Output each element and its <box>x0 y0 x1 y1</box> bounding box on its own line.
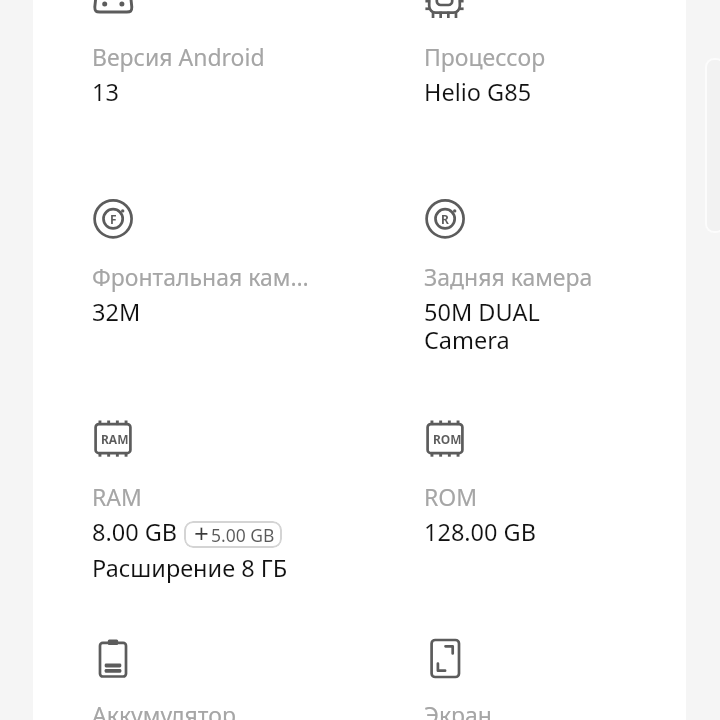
button[interactable]: Display <box>424 638 720 720</box>
staticText: 13 <box>92 76 119 108</box>
staticText: R <box>441 211 449 227</box>
staticText: 32M <box>92 296 141 328</box>
staticText: 5.00 GB <box>211 523 275 547</box>
staticText: 128.00 GB <box>424 516 537 548</box>
staticText: Расширение 8 ГБ <box>92 552 288 584</box>
staticText: + <box>194 521 209 542</box>
staticText: 50M DUAL Camera <box>424 296 540 356</box>
staticText: Фронтальная камера <box>92 261 316 292</box>
button[interactable]: Rear camera <box>424 200 720 405</box>
button[interactable]: + <box>184 521 282 548</box>
staticText: ROM <box>424 481 648 512</box>
staticText: ROM <box>433 431 462 447</box>
other: Display <box>424 638 464 678</box>
other: Processor <box>424 0 464 20</box>
staticText: Версия Android <box>92 41 316 72</box>
button[interactable]: RAM <box>92 420 392 625</box>
staticText: 8.00 GB <box>92 516 178 548</box>
other: Rear camera <box>424 200 464 240</box>
other: Battery <box>92 638 132 678</box>
button[interactable]: Android version <box>92 0 392 185</box>
other: Android version <box>92 0 132 20</box>
staticText: RAM <box>101 431 129 447</box>
button[interactable]: Battery <box>92 638 392 720</box>
staticText: RAM <box>92 481 316 512</box>
staticText: F <box>110 211 117 227</box>
button[interactable]: Processor <box>424 0 720 185</box>
staticText: Процессор <box>424 41 648 72</box>
button[interactable]: ROM <box>424 420 720 625</box>
staticText: Аккумулятор <box>92 699 316 720</box>
staticText: Helio G85 <box>424 76 532 108</box>
button[interactable]: Front camera <box>92 200 392 405</box>
other: RAM <box>92 420 132 460</box>
staticText: Задняя камера <box>424 261 648 292</box>
staticText: Экран <box>424 699 648 720</box>
other: ROM <box>424 420 464 460</box>
other: Front camera <box>92 200 132 240</box>
